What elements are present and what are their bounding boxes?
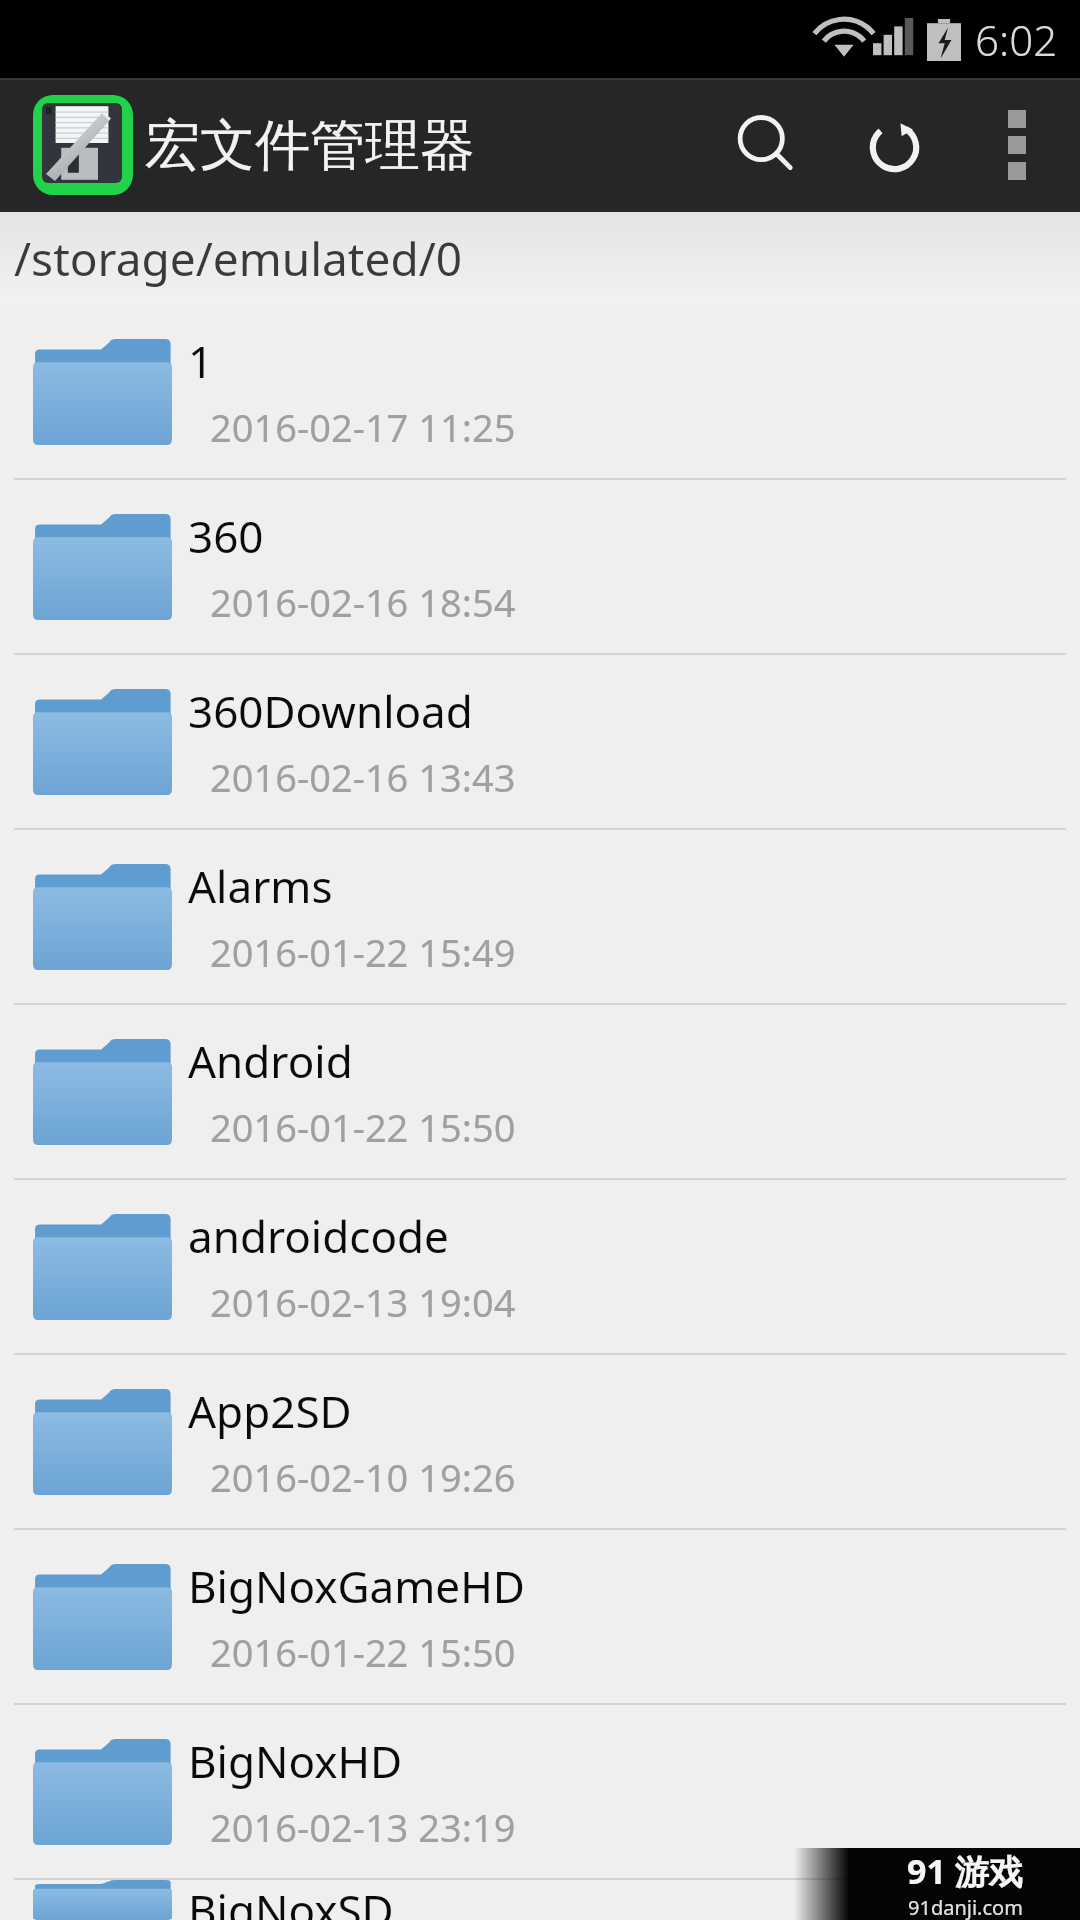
staticText: 2016-02-16 18:54	[210, 576, 516, 628]
button[interactable]: BigNoxSD	[0, 1880, 1080, 1920]
staticText: 91danji.com	[908, 1894, 1023, 1920]
staticText: 91 游戏	[907, 1848, 1023, 1894]
staticText: 2016-02-16 13:43	[210, 751, 516, 803]
staticText: Android	[188, 1031, 353, 1091]
staticText: 360	[188, 506, 264, 566]
staticText: 360Download	[188, 681, 473, 741]
button[interactable]: 1	[0, 305, 1080, 478]
staticText: 2016-02-13 19:04	[210, 1276, 516, 1328]
button[interactable]: Alarms	[0, 830, 1080, 1003]
staticText: Alarms	[188, 856, 333, 916]
staticText: BigNoxGameHD	[188, 1556, 525, 1616]
button[interactable]: More options	[962, 78, 1072, 212]
staticText: 6:02	[975, 11, 1058, 68]
button[interactable]: androidcode	[0, 1180, 1080, 1353]
button[interactable]: App2SD	[0, 1355, 1080, 1528]
staticText: 宏文件管理器	[145, 111, 475, 180]
button[interactable]: Refresh	[832, 78, 962, 212]
button[interactable]: 360Download	[0, 655, 1080, 828]
staticText: 2016-02-10 19:26	[210, 1451, 516, 1503]
staticText: App2SD	[188, 1381, 352, 1441]
staticText: androidcode	[188, 1206, 449, 1266]
staticText: 2016-01-22 15:50	[210, 1626, 516, 1678]
button[interactable]: Search	[702, 78, 832, 212]
staticText: 2016-01-22 15:50	[210, 1101, 516, 1153]
staticText: BigNoxHD	[188, 1731, 403, 1791]
button[interactable]: 360	[0, 480, 1080, 653]
button[interactable]: BigNoxHD	[0, 1705, 1080, 1878]
staticText: 2016-01-22 15:49	[210, 926, 516, 978]
staticText: 2016-02-13 23:19	[210, 1801, 516, 1853]
staticText: /storage/emulated/0	[14, 227, 463, 290]
staticText: 1	[188, 331, 214, 391]
button[interactable]: Android	[0, 1005, 1080, 1178]
staticText: 2016-02-17 11:25	[210, 401, 516, 453]
button[interactable]: BigNoxGameHD	[0, 1530, 1080, 1703]
staticText: BigNoxSD	[188, 1880, 394, 1920]
